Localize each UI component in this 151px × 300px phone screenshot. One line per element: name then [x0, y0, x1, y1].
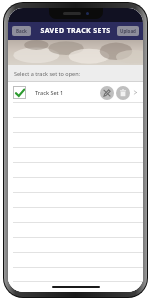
- staticText: Select a track set to open:: [14, 70, 81, 77]
- other: Open track set: [133, 90, 138, 95]
- button[interactable]: Upload: [117, 26, 139, 36]
- button[interactable]: [8, 268, 143, 282]
- staticText: SAVED TRACK SETS: [40, 26, 111, 36]
- button[interactable]: Selected: [8, 82, 143, 103]
- staticText: Upload: [120, 28, 136, 34]
- button[interactable]: Delete track set: [116, 86, 130, 100]
- other: Selected: [13, 86, 26, 99]
- staticText: Track Set 1: [35, 89, 100, 96]
- button[interactable]: [8, 253, 143, 268]
- button[interactable]: [8, 118, 143, 133]
- button[interactable]: [8, 208, 143, 223]
- button[interactable]: Edit track set: [100, 86, 114, 100]
- button[interactable]: [8, 163, 143, 178]
- button[interactable]: [8, 148, 143, 163]
- button[interactable]: [8, 193, 143, 208]
- button[interactable]: [8, 133, 143, 148]
- button[interactable]: [8, 178, 143, 193]
- staticText: Back: [16, 28, 27, 34]
- button[interactable]: [8, 103, 143, 118]
- button[interactable]: Back: [12, 26, 31, 36]
- button[interactable]: [8, 238, 143, 253]
- button[interactable]: [8, 223, 143, 238]
